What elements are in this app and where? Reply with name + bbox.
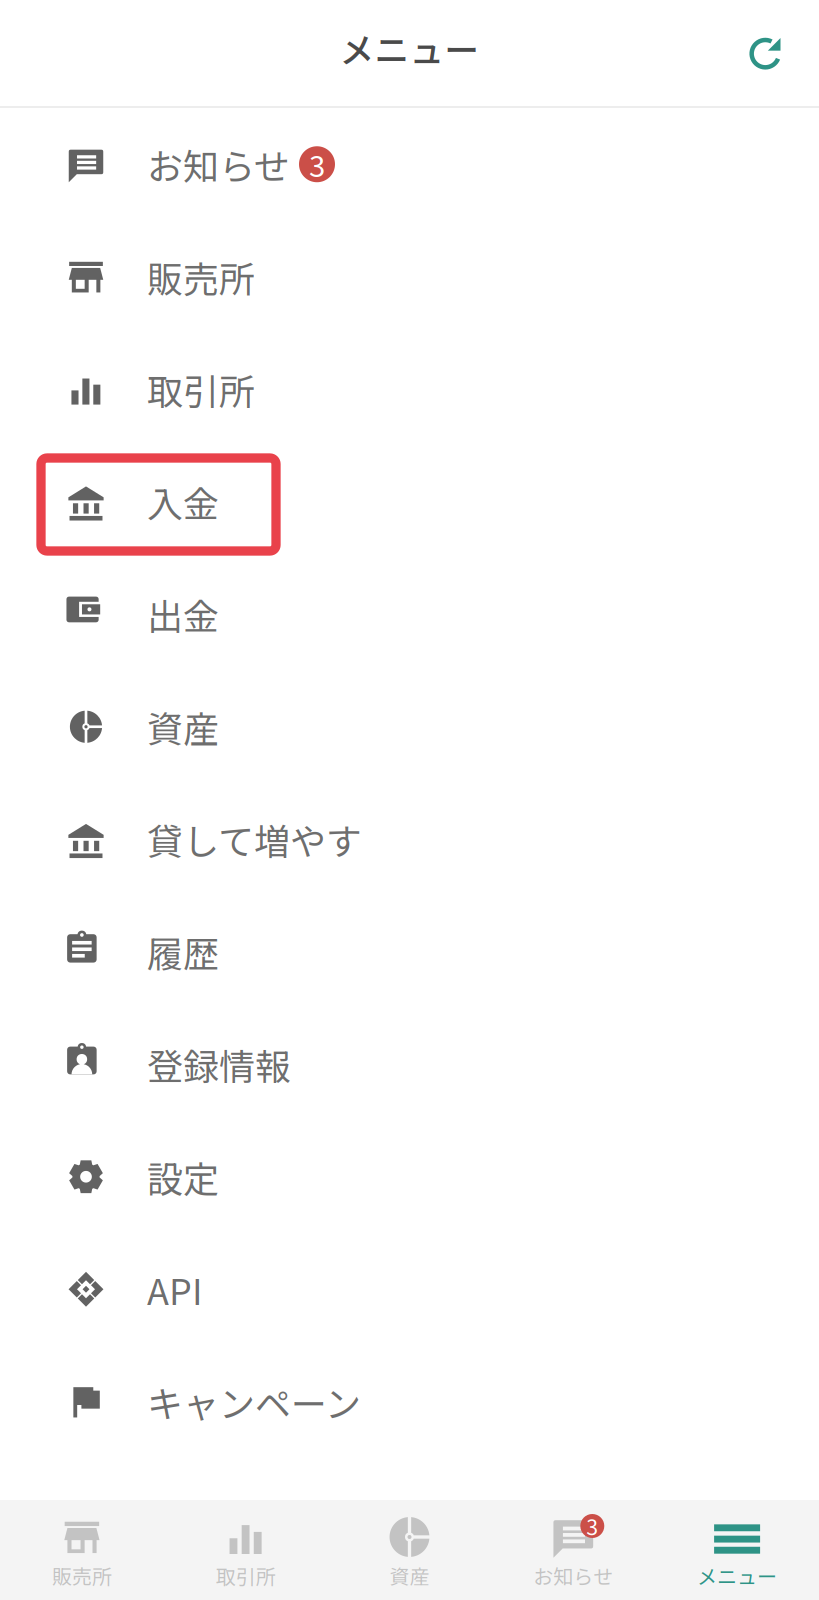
button[interactable]: 資産 — [328, 1500, 491, 1600]
button[interactable]: 販売所 — [0, 1500, 164, 1600]
staticText: 3 — [586, 1511, 598, 1541]
button[interactable]: 登録情報 — [0, 1008, 819, 1120]
button[interactable]: 取引所 — [0, 333, 819, 445]
staticText: 出金 — [147, 588, 219, 640]
staticText: 履歴 — [147, 926, 219, 978]
staticText: メニュー — [697, 1561, 777, 1590]
button[interactable]: 履歴 — [0, 895, 819, 1008]
staticText: キャンペーン — [147, 1376, 361, 1428]
button[interactable]: メニュー — [655, 1500, 819, 1600]
staticText: お知らせ — [533, 1561, 613, 1590]
button[interactable]: 設定 — [0, 1120, 819, 1233]
staticText: 3 — [309, 143, 325, 185]
staticText: 販売所 — [52, 1561, 112, 1590]
button[interactable]: 貸して増やす — [0, 783, 819, 895]
button[interactable]: 出金 — [0, 558, 819, 670]
staticText: 設定 — [147, 1151, 219, 1203]
button[interactable]: 資産 — [0, 670, 819, 783]
button[interactable]: キャンペーン — [0, 1345, 819, 1458]
staticText: 資産 — [147, 701, 219, 753]
staticText: 資産 — [389, 1561, 429, 1590]
staticText: 入金 — [147, 476, 219, 528]
staticText: お知らせ — [147, 138, 290, 190]
staticText: 登録情報 — [147, 1038, 291, 1090]
button[interactable]: Refresh — [713, 0, 819, 106]
staticText: 取引所 — [147, 363, 255, 415]
staticText: メニュー — [339, 23, 479, 73]
button[interactable]: 販売所 — [0, 220, 819, 333]
button[interactable]: 3 — [491, 1500, 655, 1600]
staticText: 販売所 — [147, 251, 255, 303]
button[interactable]: お知らせ — [0, 108, 819, 220]
button[interactable]: 入金 — [0, 445, 819, 558]
staticText: API — [147, 1263, 203, 1315]
button[interactable]: API — [0, 1233, 819, 1345]
staticText: 取引所 — [216, 1561, 276, 1590]
staticText: 貸して増やす — [147, 813, 362, 865]
button[interactable]: 取引所 — [164, 1500, 328, 1600]
